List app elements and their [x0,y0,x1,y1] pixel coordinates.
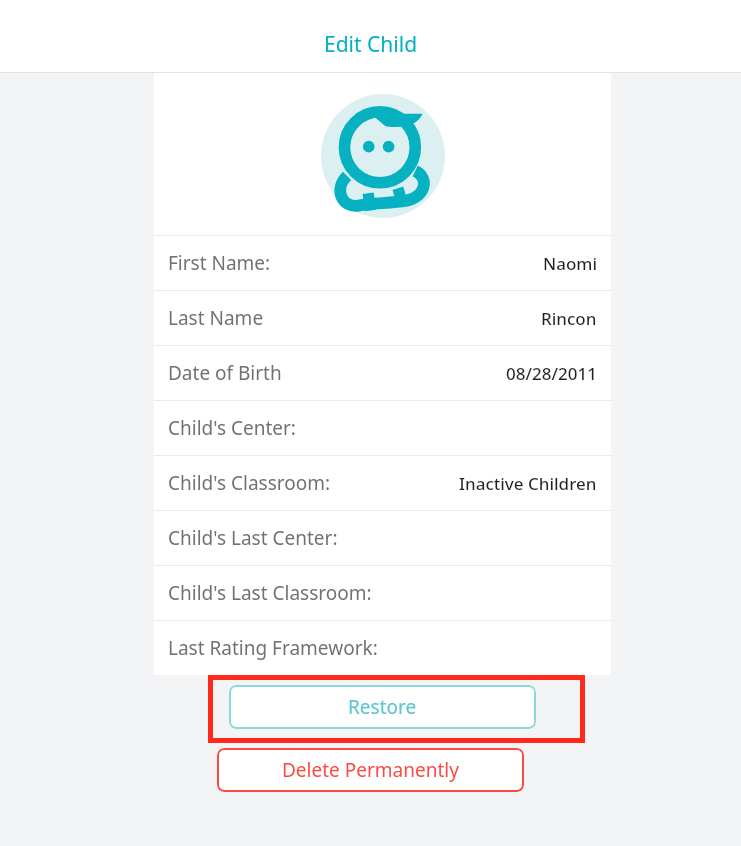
staticText: First Name: [168,250,271,276]
button[interactable]: Date of Birth [154,346,611,400]
staticText: Last Name [168,305,264,331]
button[interactable]: Child's Last Center: [154,511,611,565]
staticText: Inactive Children [459,472,597,495]
button[interactable]: Child's Center: [154,401,611,455]
staticText: Date of Birth [168,360,282,386]
button[interactable]: Child's Last Classroom: [154,566,611,620]
staticText: Edit Child [324,30,418,59]
staticText: Child's Classroom: [168,470,331,496]
button[interactable]: First Name: [154,236,611,290]
staticText: Child's Last Center: [168,525,338,551]
staticText: Delete Permanently [282,757,459,783]
other: Child avatar [321,94,445,218]
staticText: Child's Last Classroom: [168,580,372,606]
staticText: Last Rating Framework: [168,635,378,661]
button[interactable]: Restore [229,685,536,729]
button[interactable]: Last Rating Framework: [154,621,611,675]
button[interactable]: Delete Permanently [217,748,524,792]
button[interactable]: Child's Classroom: [154,456,611,510]
staticText: Rincon [541,307,597,330]
staticText: Child's Center: [168,415,296,441]
button[interactable]: Last Name [154,291,611,345]
staticText: Naomi [543,252,597,275]
staticText: Restore [348,694,417,720]
staticText: 08/28/2011 [506,362,597,385]
